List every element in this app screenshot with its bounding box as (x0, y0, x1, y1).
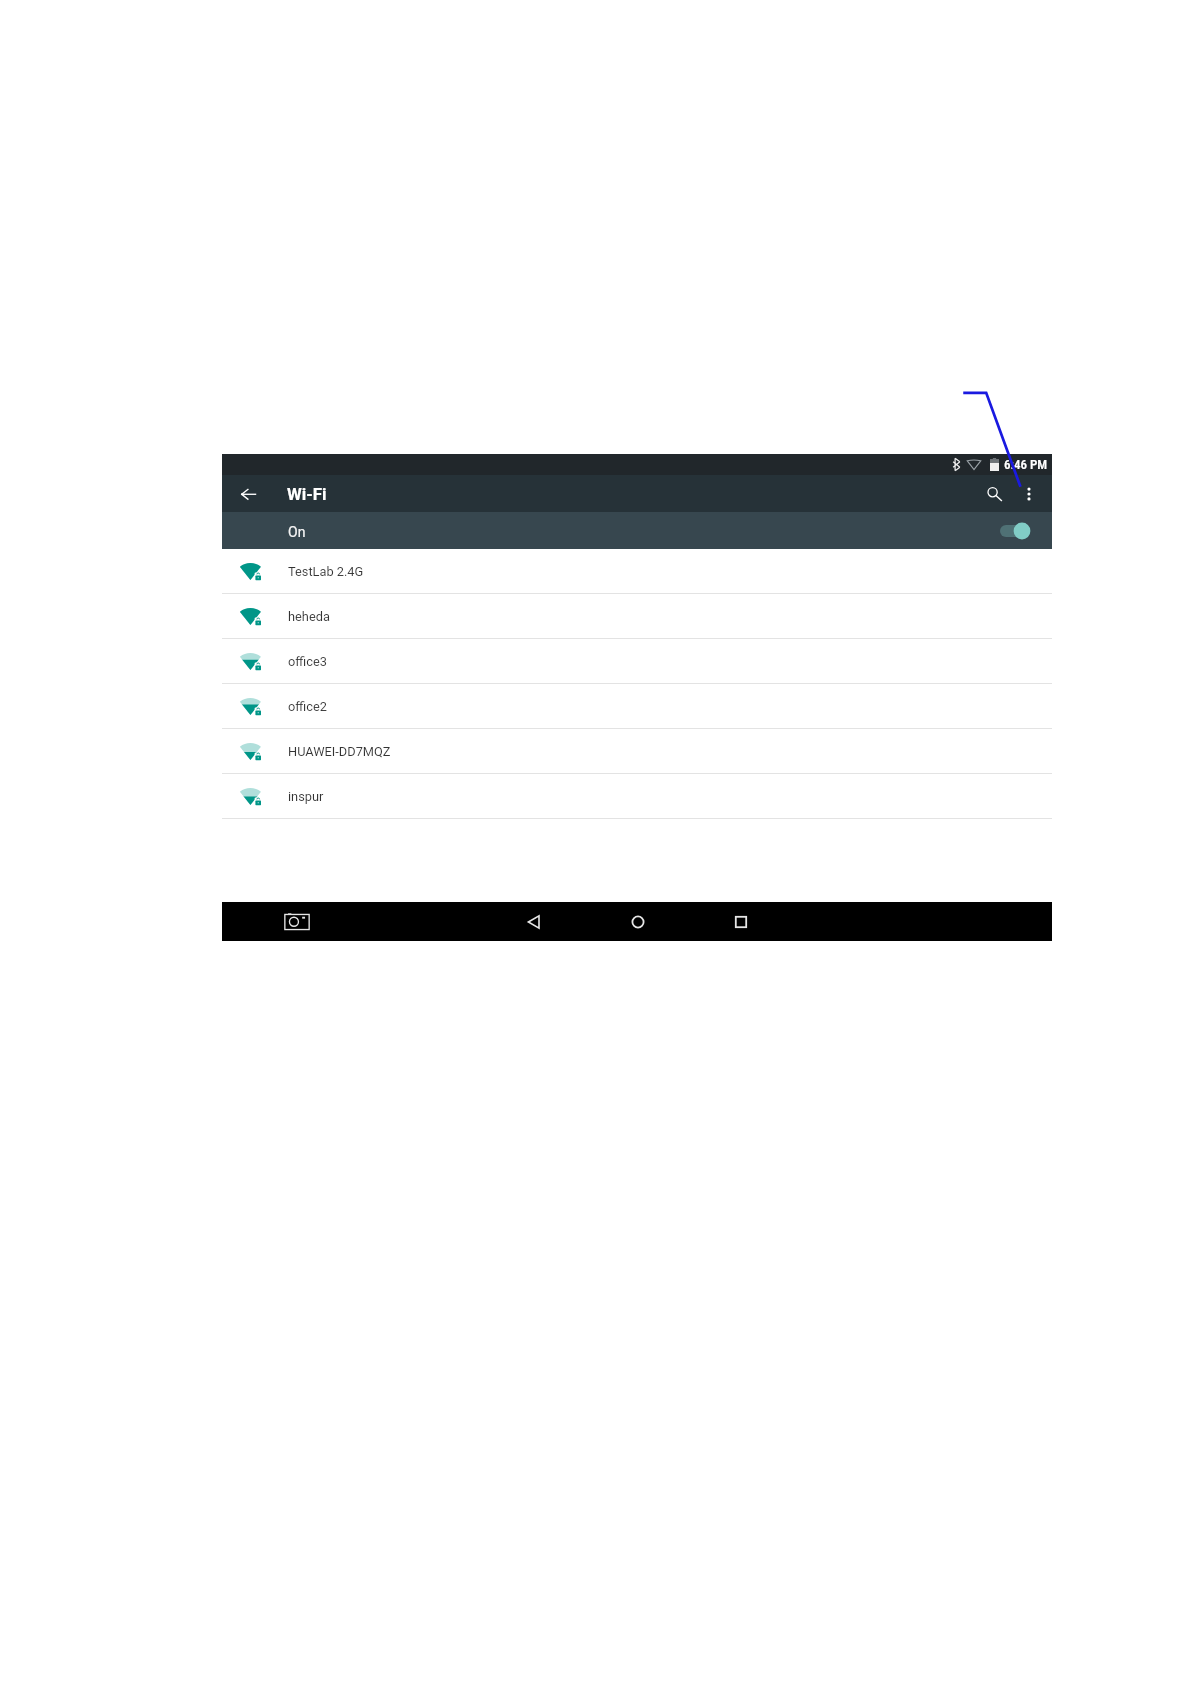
button[interactable]: office3 (222, 639, 1052, 683)
staticText: heheda (288, 609, 330, 624)
button[interactable]: Recent apps (726, 902, 756, 941)
button[interactable]: Home (623, 902, 653, 941)
staticText: inspur (288, 789, 324, 804)
button[interactable]: Search (974, 475, 1015, 512)
button[interactable]: More options (1015, 475, 1042, 512)
staticText: office2 (288, 699, 327, 714)
button[interactable]: On (222, 512, 1052, 549)
staticText: Wi-Fi (287, 484, 327, 504)
staticText: TestLab 2.4G (288, 564, 364, 579)
button[interactable]: TestLab 2.4G (222, 549, 1052, 593)
button[interactable]: inspur (222, 774, 1052, 818)
button[interactable]: Back (519, 902, 549, 941)
button[interactable]: office2 (222, 684, 1052, 728)
button[interactable]: Take screenshot (282, 902, 312, 941)
button[interactable]: heheda (222, 594, 1052, 638)
staticText: On (288, 524, 306, 540)
staticText: 6:46 PM (1004, 457, 1048, 472)
staticText: HUAWEI-DD7MQZ (288, 744, 391, 759)
button[interactable]: Navigate up (222, 475, 287, 512)
staticText: office3 (288, 654, 327, 669)
button[interactable]: HUAWEI-DD7MQZ (222, 729, 1052, 773)
